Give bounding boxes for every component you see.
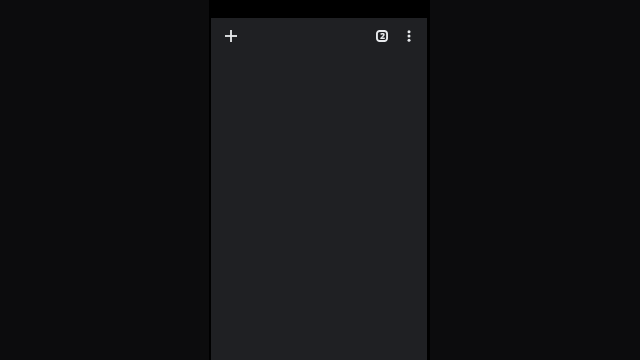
button[interactable]: New tab <box>213 18 249 54</box>
button[interactable]: Customize and control Chrome <box>391 18 427 54</box>
staticText: 2 <box>380 30 385 41</box>
button[interactable]: Switch or open tabs, 2 open <box>364 18 400 54</box>
